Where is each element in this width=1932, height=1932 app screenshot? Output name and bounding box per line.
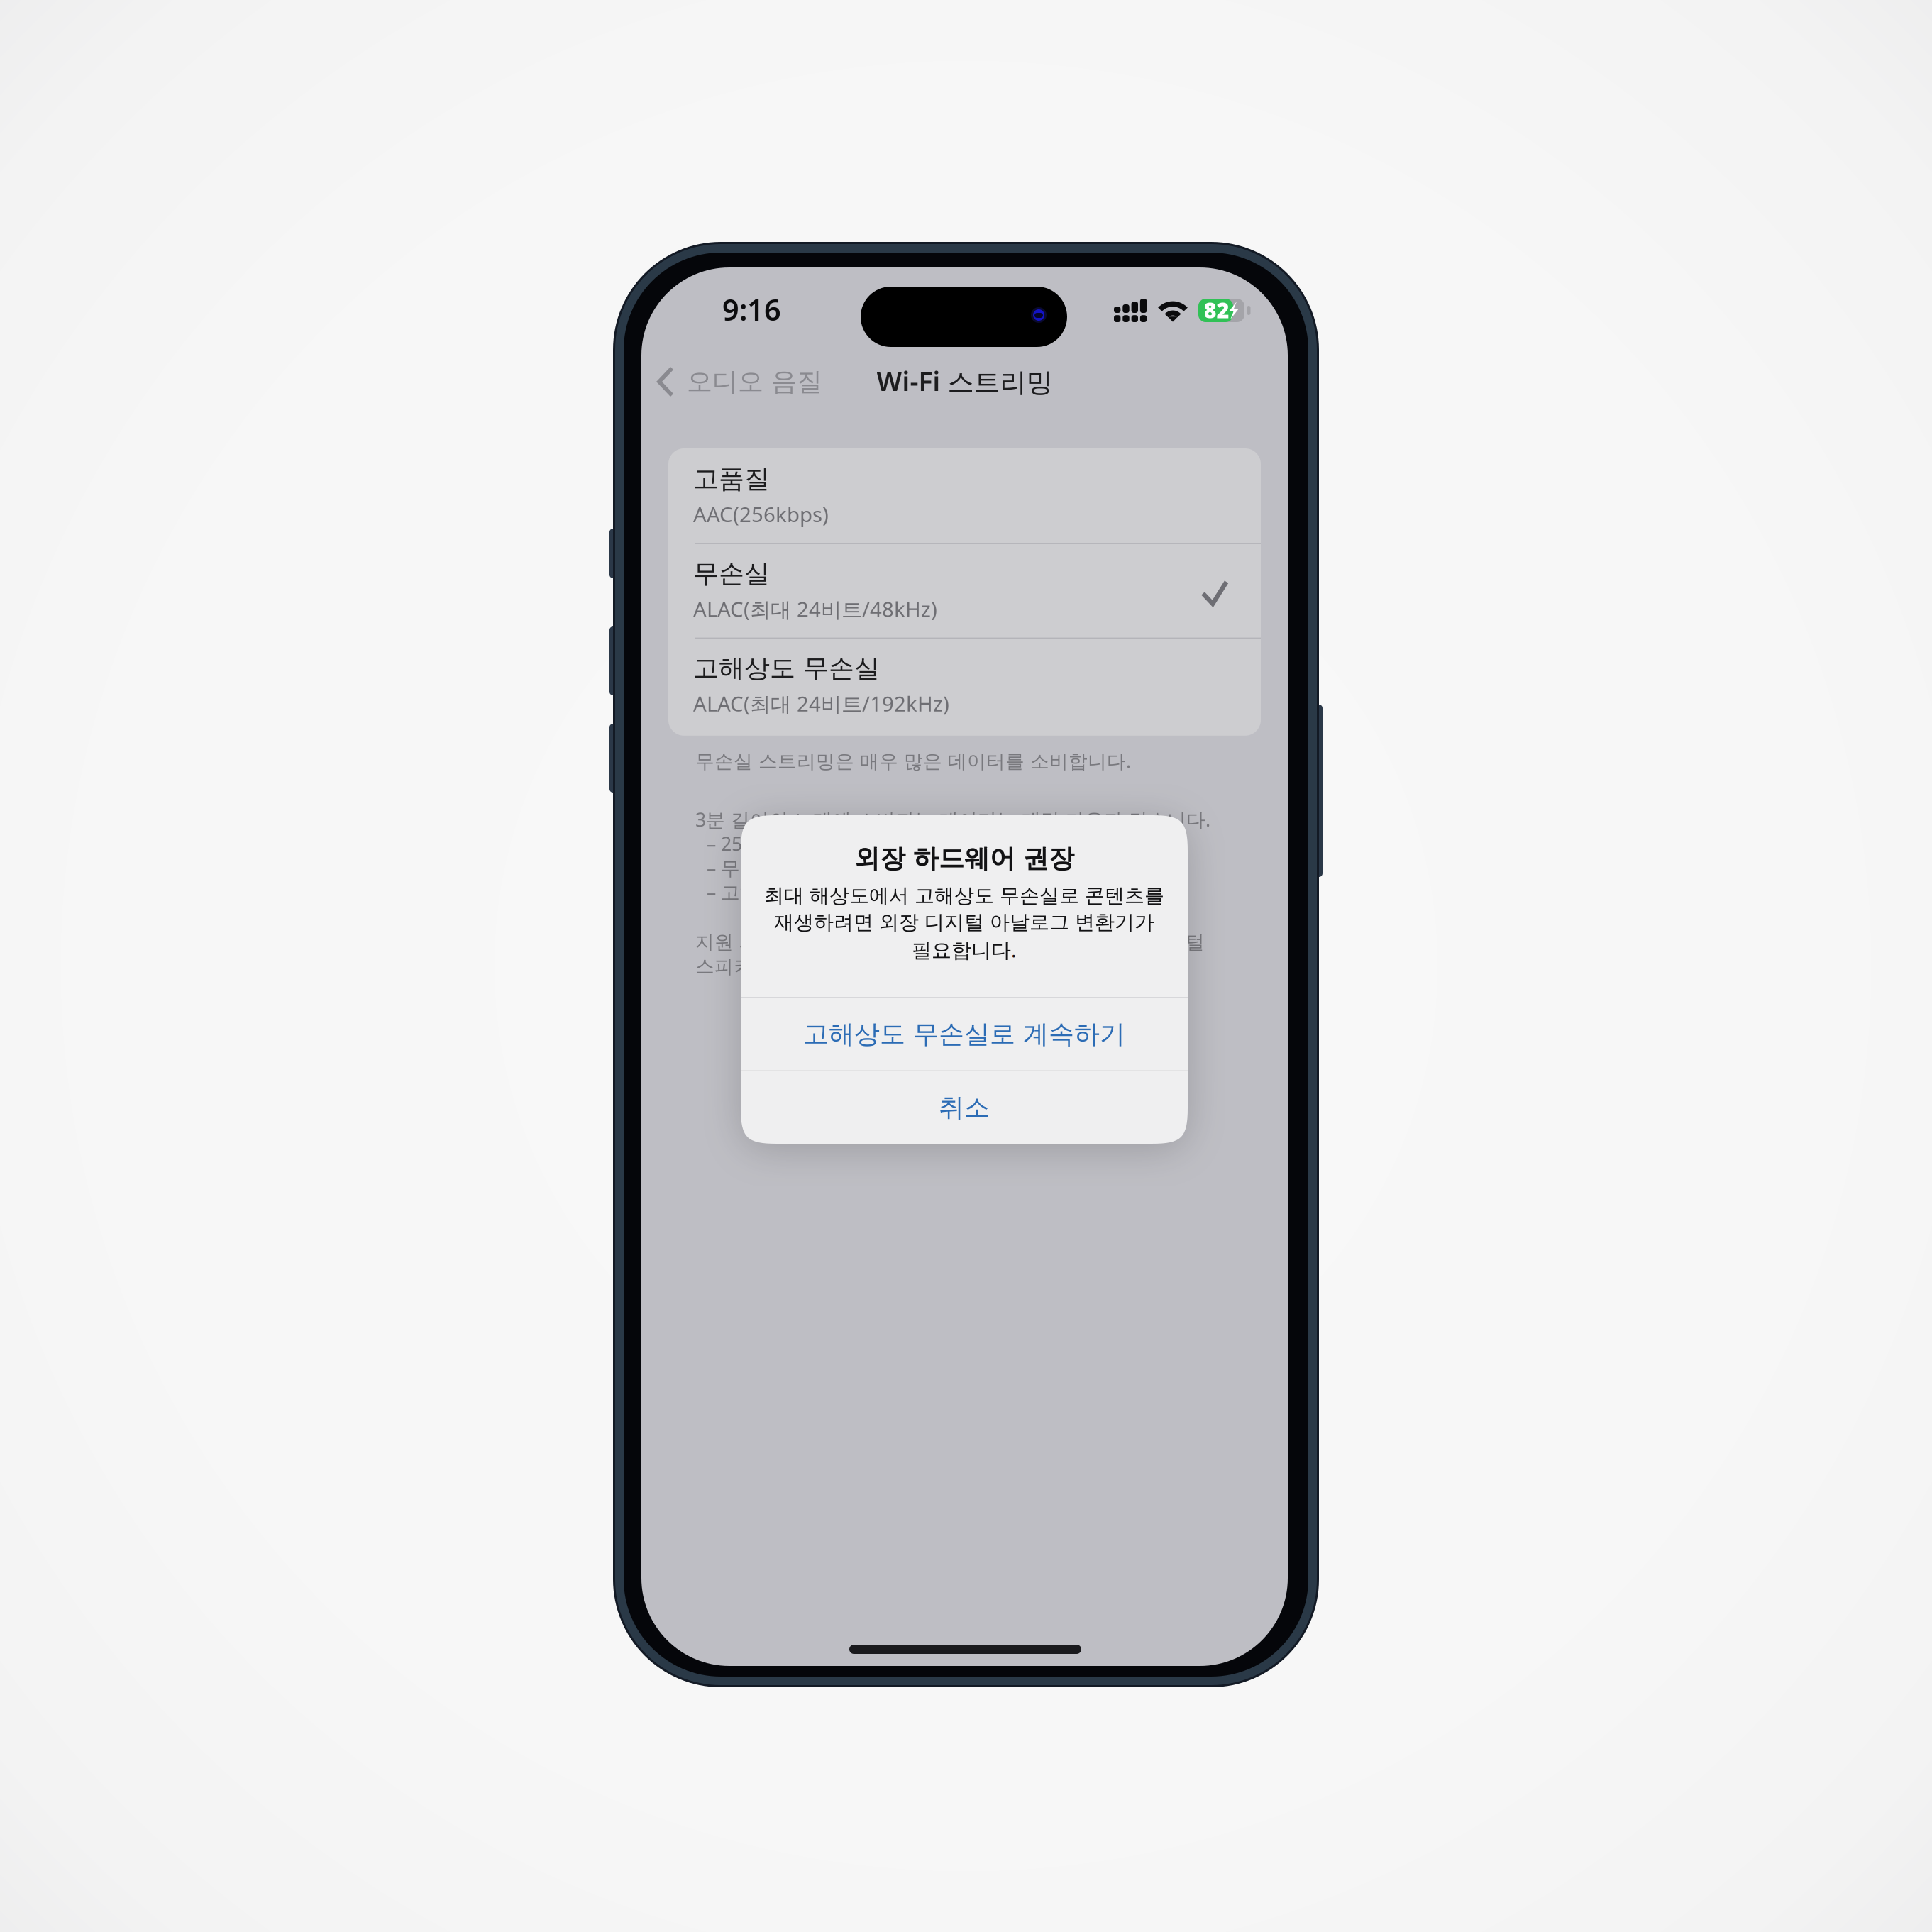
button[interactable]: 오디오 음질 xyxy=(641,357,832,407)
staticText: 3분 길이의 노래에 소비되는 데이터는 대략 다음과 같습니다. xyxy=(695,807,1210,832)
staticText: 최대 해상도에서 고해상도 무손실로 콘텐츠를 xyxy=(764,883,1164,908)
staticText: AAC(256kbps) xyxy=(693,500,829,528)
staticText: – 무손실의 경우 36MB xyxy=(707,855,897,880)
staticText: – 256kbps AAC의 경우 6MB xyxy=(707,831,944,856)
staticText: 고해상도 무손실 xyxy=(693,652,880,684)
staticText: ALAC(최대 24비트/48kHz) xyxy=(693,595,937,623)
staticText: 외장 하드웨어 권장 xyxy=(854,843,1074,874)
staticText: 취소 xyxy=(939,1092,990,1123)
staticText: 무손실 스트리밍은 매우 많은 데이터를 소비합니다. xyxy=(695,748,1131,773)
staticText: Wi-Fi 스트리밍 xyxy=(877,363,1053,399)
staticText: 82 xyxy=(1204,295,1229,324)
button[interactable]: 고해상도 무손실 xyxy=(668,638,1261,736)
staticText: 스피커에서 재생됩니다. xyxy=(695,953,898,978)
staticText: 고해상도 무손실로 계속하기 xyxy=(803,1019,1125,1050)
staticText: – 고해상도 무손실의 경우 145MB xyxy=(707,879,990,904)
staticText: ALAC(최대 24비트/192kHz) xyxy=(693,690,949,717)
staticText: 9:16 xyxy=(722,290,781,329)
staticText: 필요합니다. xyxy=(912,937,1017,963)
button[interactable]: 무손실 xyxy=(668,543,1261,638)
staticText: 고품질 xyxy=(693,463,770,495)
staticText: 지원 사항: 고해상도 무손실은 지원되는 기기 및 외장 디지털 xyxy=(695,929,1205,954)
button[interactable]: 취소 xyxy=(741,1071,1188,1144)
button[interactable]: 고품질 xyxy=(668,448,1261,543)
staticText: 재생하려면 외장 디지털 아날로그 변환기가 xyxy=(774,910,1154,934)
staticText: 무손실 xyxy=(693,558,770,589)
button[interactable]: 고해상도 무손실로 계속하기 xyxy=(741,998,1188,1070)
staticText: 오디오 음질 xyxy=(687,366,822,397)
